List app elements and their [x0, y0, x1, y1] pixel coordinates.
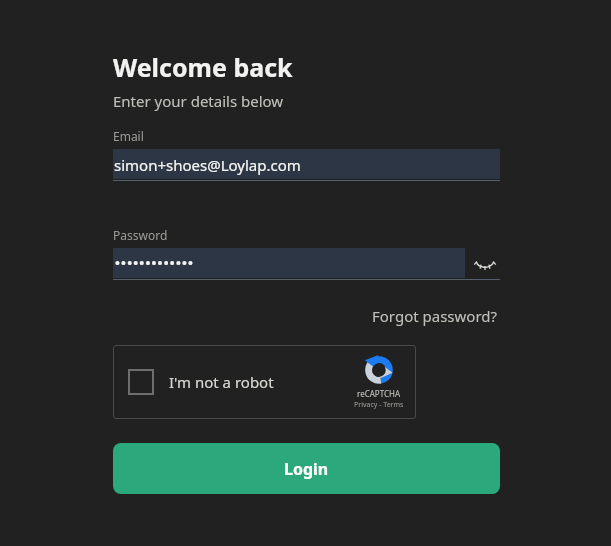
button[interactable]: [113, 248, 465, 278]
staticText: I'm not a robot: [169, 372, 274, 392]
staticText: simon+shoes@Loylap.com: [114, 155, 301, 175]
staticText: Login: [284, 458, 329, 480]
staticText: Forgot password?: [372, 306, 498, 326]
button[interactable]: I'm not a robot: [113, 345, 416, 419]
button[interactable]: Forgot password?: [370, 304, 500, 328]
staticText: Welcome back: [113, 50, 293, 84]
button[interactable]: simon+shoes@Loylap.com: [113, 149, 500, 181]
staticText: Email: [113, 128, 144, 144]
staticText: Privacy - Terms: [354, 400, 404, 410]
button[interactable]: Show password: [470, 247, 500, 277]
staticText: reCAPTCHA: [357, 388, 401, 399]
button[interactable]: Login: [113, 443, 500, 494]
staticText: Enter your details below: [113, 91, 284, 111]
staticText: Password: [113, 227, 168, 243]
staticText: •••••••••••••: [115, 254, 195, 272]
